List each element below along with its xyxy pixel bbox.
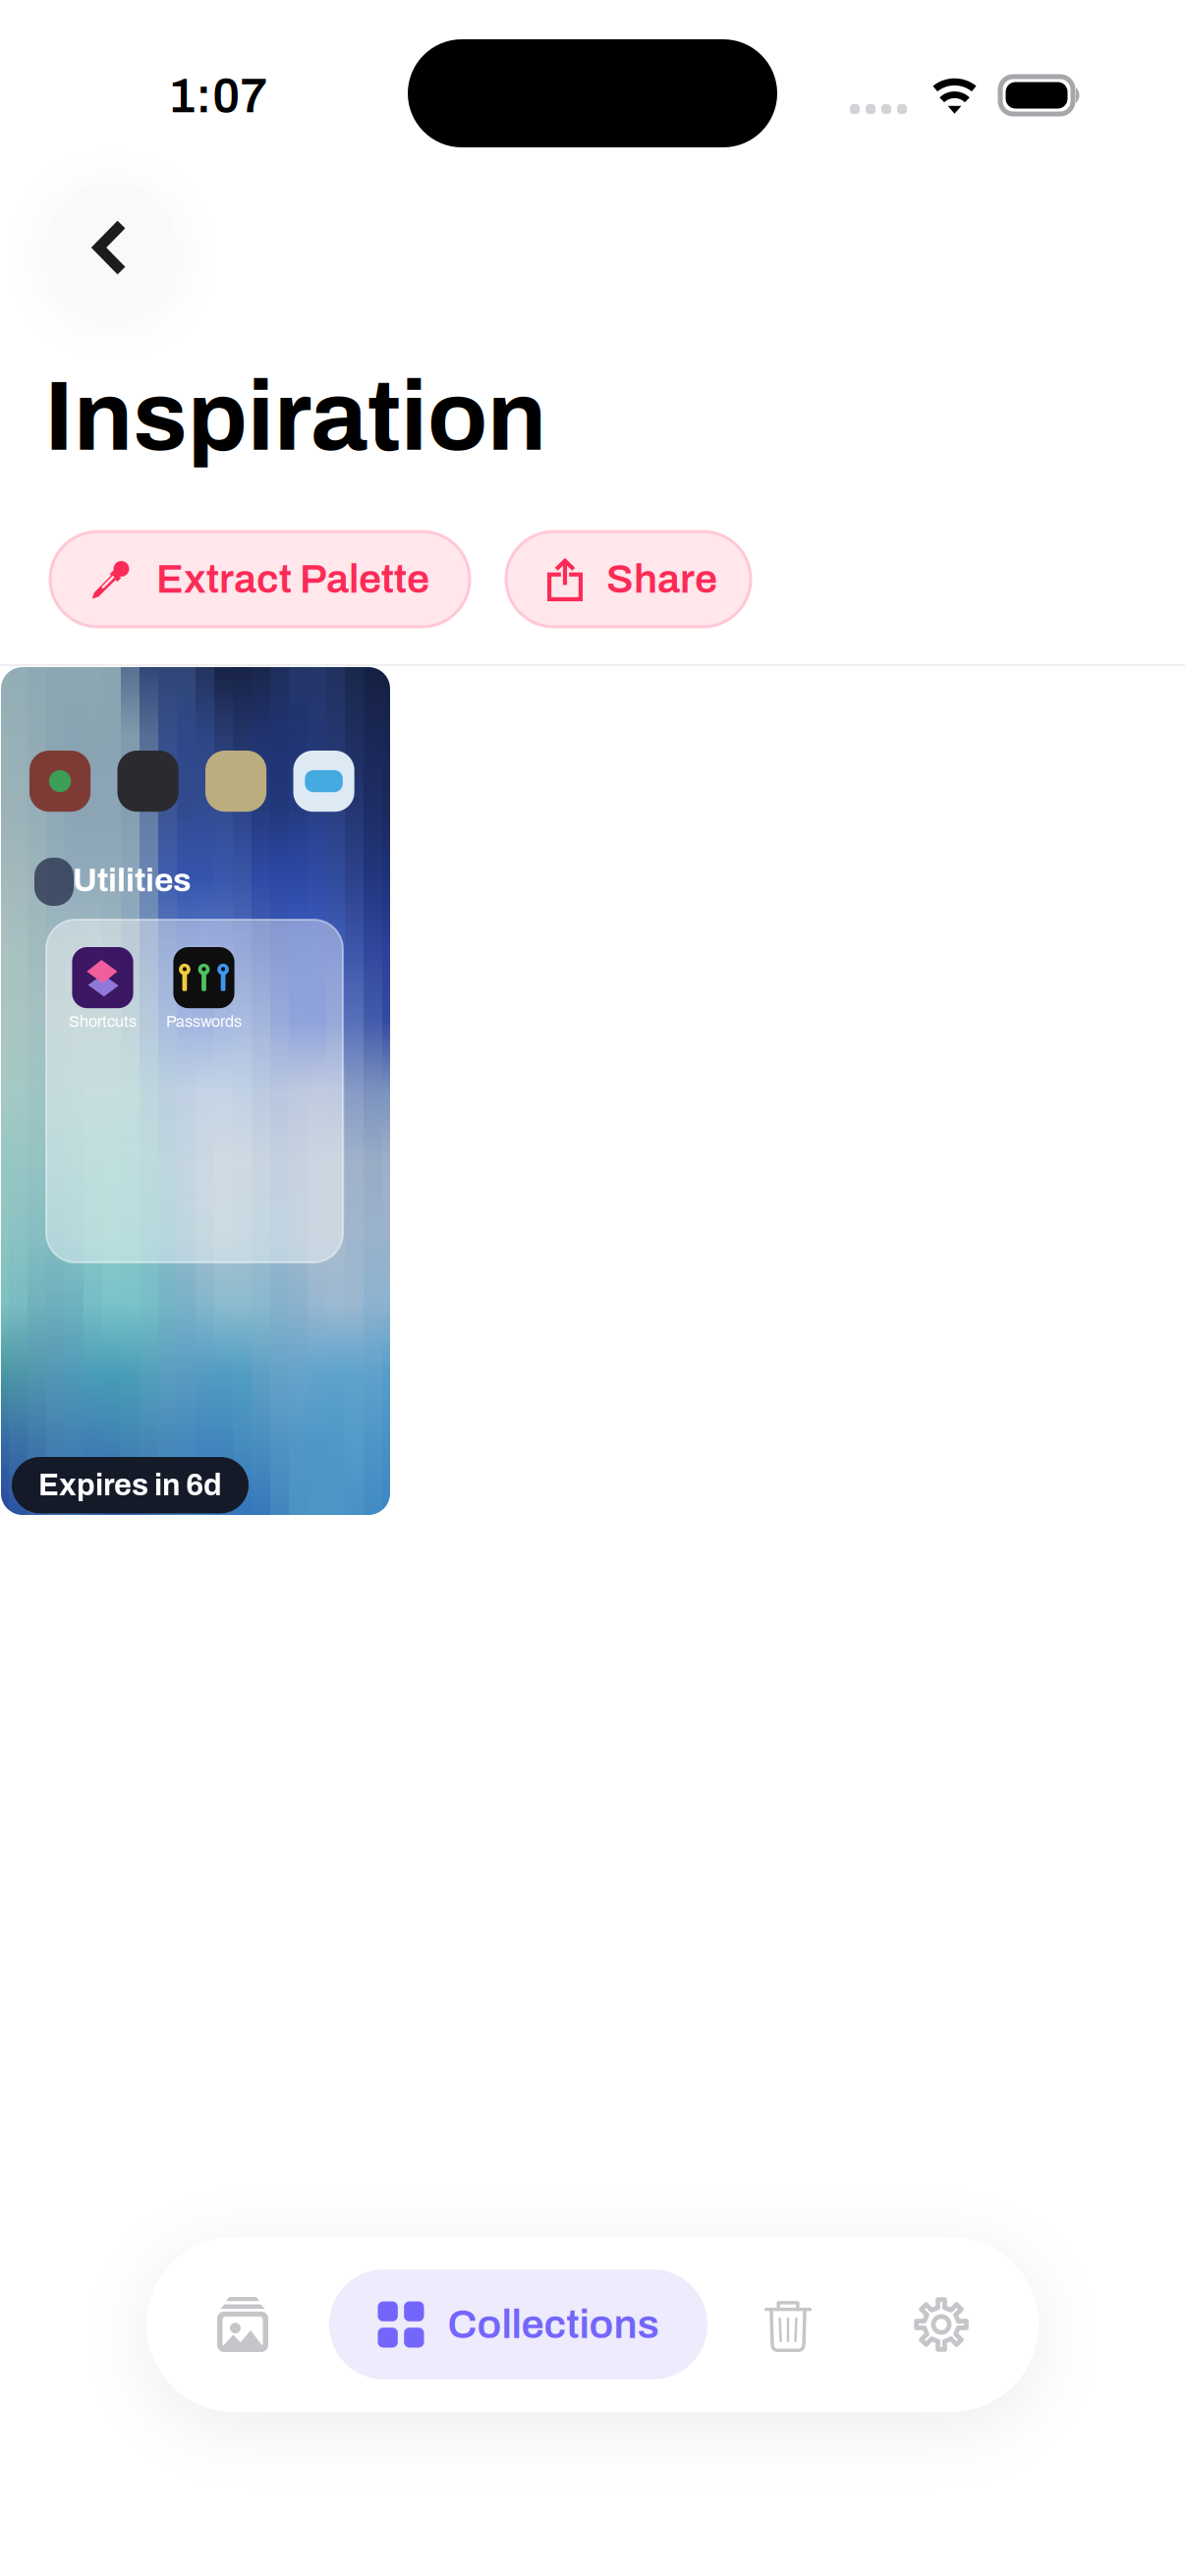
button[interactable]: Delete [709,2237,867,2412]
staticText: Expires in 6d [38,1469,222,1502]
staticText: Shortcuts [69,1013,137,1030]
staticText: 1:07 [168,70,267,123]
button[interactable]: Collections [329,2269,707,2380]
staticText: Collections [448,2302,659,2347]
button[interactable]: Settings [863,2237,1020,2412]
staticText: Inspiration [44,364,546,470]
staticText: Extract Palette [156,557,429,601]
button[interactable]: Share [506,532,751,627]
staticText: Passwords [166,1013,242,1030]
staticText: Utilities [73,863,192,898]
staticText: Share [606,557,717,601]
button[interactable]: Extract Palette [50,532,470,627]
button[interactable]: Library [164,2237,321,2412]
button[interactable]: Back [47,183,177,312]
